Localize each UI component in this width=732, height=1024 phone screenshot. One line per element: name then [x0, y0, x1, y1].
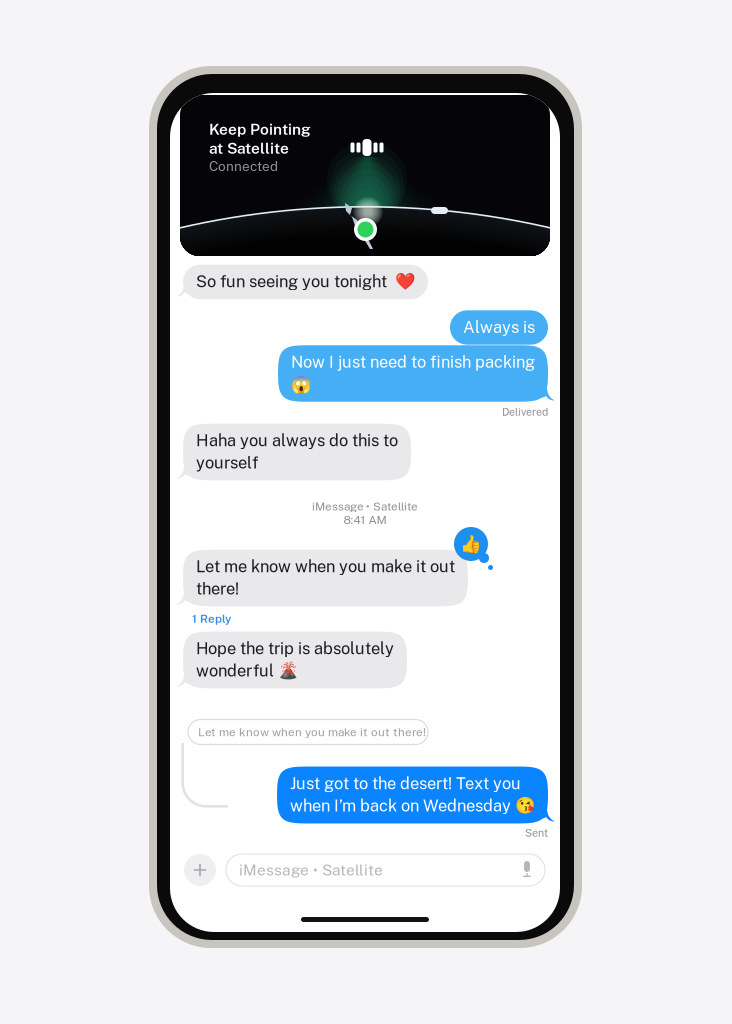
button[interactable]: iMessage • Satellite	[226, 854, 545, 886]
staticText: Delivered	[502, 406, 548, 418]
staticText: iMessage • Satellite	[239, 861, 383, 879]
staticText: yourself	[196, 453, 258, 472]
staticText: Sent	[525, 827, 548, 839]
staticText: So fun seeing you tonight ❤️	[196, 272, 415, 291]
staticText: at Satellite	[209, 139, 289, 157]
staticText: iMessage • Satellite	[312, 499, 418, 513]
staticText: Hope the trip is absolutely	[196, 639, 394, 658]
staticText: Keep Pointing	[209, 120, 311, 138]
staticText: 1 Reply	[192, 612, 231, 625]
button[interactable]: Add attachment	[184, 854, 216, 886]
staticText: Now I just need to finish packing	[291, 352, 535, 371]
staticText: Let me know when you make it out there!	[198, 725, 426, 739]
staticText: Let me know when you make it out	[196, 557, 455, 576]
staticText: Just got to the desert! Text you	[290, 774, 521, 793]
staticText: wonderful 🌋	[196, 661, 298, 680]
staticText: 8:41 AM	[343, 513, 386, 527]
staticText: 👍	[460, 534, 482, 554]
staticText: 😱	[291, 374, 311, 394]
staticText: Haha you always do this to	[196, 431, 398, 450]
staticText: there!	[196, 579, 239, 598]
staticText: when I’m back on Wednesday 😘	[290, 796, 535, 815]
staticText: Connected	[209, 158, 278, 174]
staticText: Always is	[463, 317, 535, 337]
